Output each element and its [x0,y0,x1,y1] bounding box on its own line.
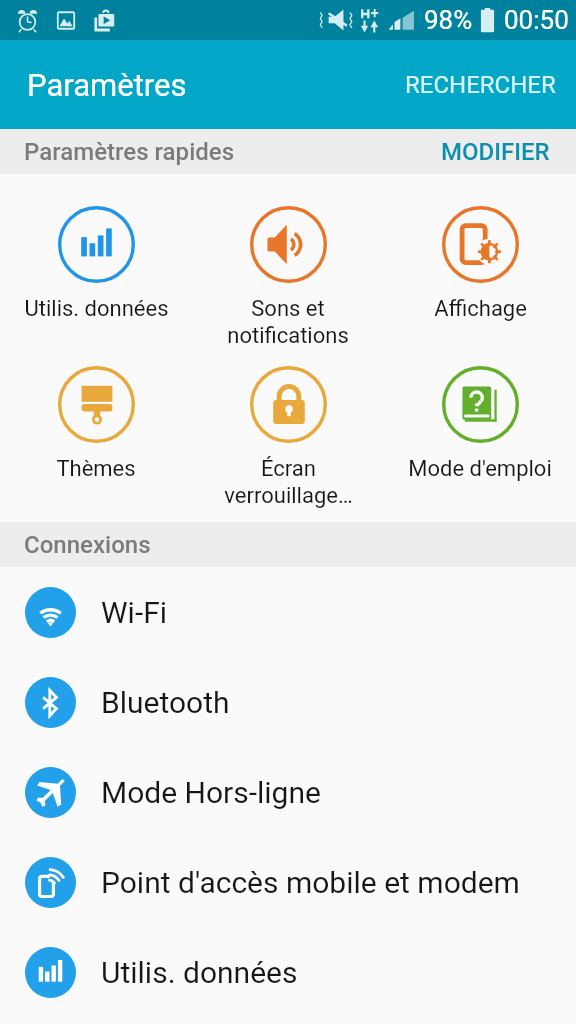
staticText: Thèmes [56,456,136,482]
staticText: Mode Hors-ligne [101,775,321,810]
staticText: Affichage [434,296,527,322]
staticText: Sons et notifications [227,296,349,348]
staticText: Utilis. données [101,955,298,990]
staticText: MODIFIER [441,138,550,165]
button[interactable]: Wi-Fi [0,567,576,657]
staticText: 98% [424,5,473,35]
button[interactable]: Affichage [384,206,576,322]
button[interactable]: Mode d'emploi [384,366,576,482]
staticText: RECHERCHER [405,71,556,99]
button[interactable]: Sons et notifications [192,206,384,348]
button[interactable]: Écran verrouillage… [192,366,384,508]
button[interactable]: MODIFIER [415,129,576,174]
staticText: Mode d'emploi [408,456,552,482]
staticText: Point d'accès mobile et modem [101,865,520,900]
button[interactable]: Bluetooth [0,657,576,747]
button[interactable]: Point d'accès mobile et modem [0,837,576,927]
staticText: Utilis. données [24,296,169,322]
button[interactable]: RECHERCHER [385,55,576,115]
button[interactable]: Utilis. données [0,927,576,1017]
staticText: Paramètres [27,67,187,103]
staticText: Écran verrouillage… [224,456,353,508]
button[interactable]: Utilis. données [0,206,192,322]
staticText: Paramètres rapides [24,138,235,166]
staticText: Connexions [24,531,151,559]
staticText: Wi-Fi [101,595,168,630]
button[interactable]: Mode Hors-ligne [0,747,576,837]
staticText: 00:50 [504,5,569,35]
button[interactable]: Thèmes [0,366,192,482]
staticText: Bluetooth [101,685,230,720]
